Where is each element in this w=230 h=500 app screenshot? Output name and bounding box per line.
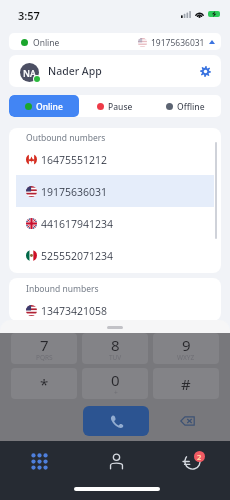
button[interactable]: 19175636031 xyxy=(16,175,214,207)
staticText: 19175636031 xyxy=(151,37,205,49)
staticText: Online xyxy=(36,101,63,113)
staticText: TUV xyxy=(109,353,122,362)
button[interactable]: Contacts xyxy=(100,445,132,477)
button[interactable]: Offline xyxy=(150,95,221,117)
staticText: Online xyxy=(33,37,60,49)
button[interactable]: Online xyxy=(21,36,60,48)
staticText: + xyxy=(114,388,118,397)
staticText: 7 xyxy=(40,335,49,355)
staticText: WXYZ xyxy=(177,353,195,362)
staticText: # xyxy=(181,374,191,394)
button[interactable]: 16475551212 xyxy=(16,143,214,175)
staticText: * xyxy=(40,374,49,394)
staticText: 16475551212 xyxy=(41,153,108,167)
staticText: 525552071234 xyxy=(41,249,114,263)
staticText: NA xyxy=(23,67,36,79)
staticText: 2 xyxy=(197,452,202,462)
staticText: 9 xyxy=(182,335,191,355)
staticText: 0 xyxy=(111,370,120,390)
button[interactable]: Online xyxy=(9,95,79,117)
button[interactable]: Settings xyxy=(197,63,213,79)
button[interactable]: Recents xyxy=(176,445,208,477)
staticText: 3:57 xyxy=(18,8,40,23)
staticText: 19175636031 xyxy=(41,185,108,199)
staticText: 441617941234 xyxy=(41,217,114,231)
button[interactable]: Dialpad xyxy=(23,445,55,477)
button[interactable]: 0 xyxy=(82,368,148,399)
button[interactable]: Backspace xyxy=(178,411,196,431)
staticText: Pause xyxy=(108,101,133,113)
button[interactable]: Pause xyxy=(79,95,150,117)
button[interactable]: # xyxy=(153,368,219,399)
button[interactable]: 7 xyxy=(11,333,77,364)
button[interactable]: * xyxy=(11,368,77,399)
staticText: Offline xyxy=(177,101,205,113)
staticText: Outbound numbers xyxy=(26,132,106,144)
staticText: 8 xyxy=(111,335,120,355)
staticText: Nader App xyxy=(48,64,102,78)
staticText: PQRS xyxy=(36,353,53,362)
button[interactable]: 9 xyxy=(153,333,219,364)
button[interactable]: 8 xyxy=(82,333,148,364)
staticText: 13473421058 xyxy=(41,304,108,318)
staticText: Inbound numbers xyxy=(26,283,99,295)
button[interactable]: 441617941234 xyxy=(16,207,214,239)
button[interactable]: Call xyxy=(83,406,149,436)
button[interactable]: 13473421058 xyxy=(16,294,214,321)
button[interactable]: 19175636031 xyxy=(138,36,215,48)
button[interactable]: 525552071234 xyxy=(16,239,214,271)
